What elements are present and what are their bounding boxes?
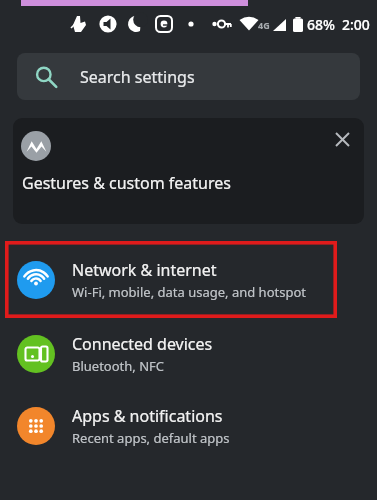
button[interactable]: Search settings [17,53,360,100]
staticText: Network & internet [72,259,217,281]
staticText: Wi-Fi, mobile, data usage, and hotspot [72,283,306,301]
staticText: Bluetooth, NFC [72,357,165,375]
staticText: Gestures & custom features [22,172,231,194]
button[interactable]: Apps & notifications [0,390,377,462]
staticText: 2:00 [342,15,370,34]
staticText: Connected devices [72,333,213,355]
staticText: 4G [258,19,270,31]
staticText: Recent apps, default apps [72,429,230,447]
staticText: 68% [307,15,335,34]
button[interactable]: Dismiss suggestion [327,124,357,154]
button[interactable]: Network & internet [5,241,337,318]
staticText: Apps & notifications [72,405,223,427]
button[interactable]: Connected devices [0,318,377,390]
button[interactable]: Gestures & custom features [13,118,364,224]
staticText: Search settings [80,66,195,88]
